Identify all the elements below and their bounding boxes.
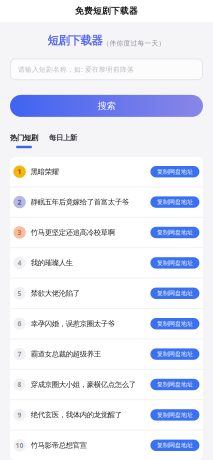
staticText: 幸孕闪婚，误惹京圈太子爷 (31, 319, 115, 328)
staticText: 复制网盘地址 (157, 289, 193, 297)
staticText: 7 (18, 350, 22, 359)
staticText: 1 (18, 167, 22, 176)
staticText: 复制网盘地址 (157, 441, 193, 449)
button[interactable]: 复制网盘地址 (150, 348, 199, 360)
staticText: 禁欲大佬沦陷了 (31, 289, 80, 298)
staticText: 9 (18, 410, 22, 419)
button[interactable]: 复制网盘地址 (150, 257, 199, 269)
staticText: 复制网盘地址 (157, 411, 193, 419)
staticText: 复制网盘地址 (157, 198, 193, 206)
staticText: 复制网盘地址 (157, 320, 193, 327)
button[interactable]: 复制网盘地址 (150, 379, 199, 390)
staticText: 复制网盘地址 (157, 168, 193, 175)
staticText: 热门短剧 (10, 133, 38, 142)
staticText: 6 (18, 319, 22, 328)
staticText: 免费短剧下载器 (75, 5, 138, 16)
staticText: 8 (18, 380, 22, 389)
staticText: 每日上新 (49, 133, 77, 142)
staticText: 我的璀璨人生 (31, 258, 73, 267)
button[interactable]: 复制网盘地址 (150, 440, 199, 451)
staticText: 2 (18, 198, 22, 207)
staticText: 穿成京圈大小姐，豪横亿点怎么了 (31, 380, 136, 389)
staticText: 复制网盘地址 (157, 259, 193, 267)
staticText: 复制网盘地址 (157, 229, 193, 236)
staticText: 复制网盘地址 (157, 381, 193, 388)
button[interactable]: 复制网盘地址 (150, 288, 199, 299)
staticText: 4 (18, 258, 22, 267)
staticText: 黑暗荣耀 (31, 167, 59, 176)
staticText: 霸道女总裁的超级养王 (31, 349, 101, 359)
staticText: 请输入短剧名称，如: 爱在黎明前降落 (18, 65, 134, 74)
staticText: 3 (18, 228, 22, 237)
button[interactable]: 每日上新 (49, 133, 77, 148)
button[interactable]: 复制网盘地址 (150, 318, 199, 329)
button[interactable]: 复制网盘地址 (150, 196, 199, 208)
staticText: 5 (18, 289, 22, 298)
staticText: 复制网盘地址 (157, 350, 193, 358)
staticText: 竹马影帝总想官宣 (31, 441, 87, 450)
staticText: （伴你度过每一天） (102, 39, 165, 47)
staticText: 搜索 (97, 100, 115, 112)
button[interactable]: 复制网盘地址 (150, 166, 199, 177)
staticText: 竹马更坚定还追高冷校草啊 (31, 228, 115, 237)
button[interactable]: 复制网盘地址 (150, 409, 199, 421)
staticText: 短剧下载器 (47, 33, 102, 48)
staticText: 10 (16, 441, 24, 450)
staticText: 绝代玄医，我体内的龙觉醒了 (31, 410, 122, 419)
staticText: 静眠五年后竟嫁给了首富太子爷 (31, 197, 129, 207)
button[interactable]: 复制网盘地址 (150, 227, 199, 238)
button[interactable]: 热门短剧 (10, 133, 38, 148)
button[interactable]: 搜索 (0, 95, 213, 117)
